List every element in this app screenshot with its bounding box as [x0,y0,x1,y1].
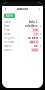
staticText: Seats [4,32,10,36]
staticText: Name [4,20,11,24]
button[interactable]: Plan [4,28,41,32]
button[interactable]: Email [4,24,41,28]
staticText: Email [4,24,10,28]
button[interactable]: Status [4,44,41,48]
staticText: OK [34,44,38,48]
button[interactable]: More [37,6,42,11]
staticText: Mar 4 [30,40,38,44]
button[interactable]: Seats [4,32,41,36]
staticText: 12 [34,32,38,36]
staticText: Owner [4,48,13,52]
button[interactable]: Owner [4,48,41,52]
staticText: Pro [33,28,38,32]
button[interactable]: Renews [4,40,41,44]
staticText: Plan [4,28,10,32]
staticText: Active [6,14,14,17]
staticText: ada [32,48,38,52]
staticText: EU West [28,36,38,40]
button[interactable]: Back [3,6,8,11]
staticText: Account [17,7,28,11]
staticText: Region [4,36,15,40]
staticText: Renews [4,40,14,44]
staticText: Ada L. [29,20,38,24]
staticText: ada@x.io [25,24,38,28]
button[interactable]: Name [4,20,41,24]
staticText: Status [4,44,11,48]
button[interactable]: Region [4,36,41,40]
